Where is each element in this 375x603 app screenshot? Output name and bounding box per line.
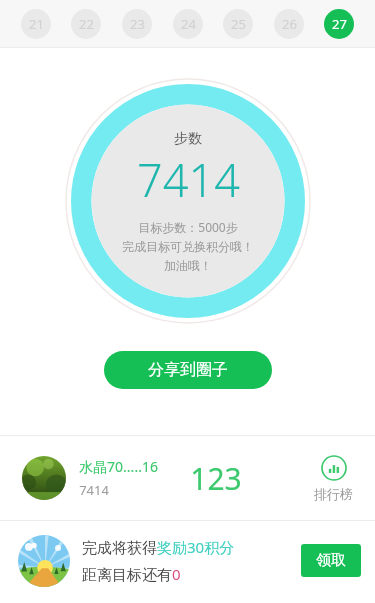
staticText: 排行榜 [314,486,353,502]
staticText: 26 [282,15,297,33]
button[interactable]: 领取 [301,544,361,577]
button[interactable]: 21 [21,9,51,39]
staticText: 加油哦！ [164,258,212,273]
button[interactable]: 25 [223,9,253,39]
button[interactable]: 24 [173,9,203,39]
button[interactable]: 分享到圈子 [104,351,272,389]
button[interactable]: 23 [122,9,152,39]
staticText: 距离目标还有0 [82,564,181,584]
staticText: 目标步数：5000步 [138,219,238,235]
staticText: 21 [29,15,44,33]
staticText: 27 [332,15,347,33]
staticText: 领取 [316,551,346,570]
staticText: 7414 [79,481,109,499]
staticText: 25 [231,15,246,33]
staticText: 分享到圈子 [148,360,228,380]
staticText: 24 [181,15,196,33]
staticText: 步数 [174,130,202,148]
button[interactable]: 27 [324,9,354,39]
staticText: 完成将获得奖励30积分 [82,537,235,557]
button[interactable]: 排行榜 [314,455,353,502]
staticText: 23 [130,15,145,33]
staticText: 水晶70.....16 [79,457,158,476]
button[interactable]: 水晶70.....16 [0,436,375,520]
staticText: 完成目标可兑换积分哦！ [122,239,254,254]
button[interactable]: 26 [274,9,304,39]
staticText: 123 [190,458,242,499]
staticText: 7414 [137,149,240,210]
staticText: 22 [79,15,94,33]
button[interactable]: 22 [71,9,101,39]
